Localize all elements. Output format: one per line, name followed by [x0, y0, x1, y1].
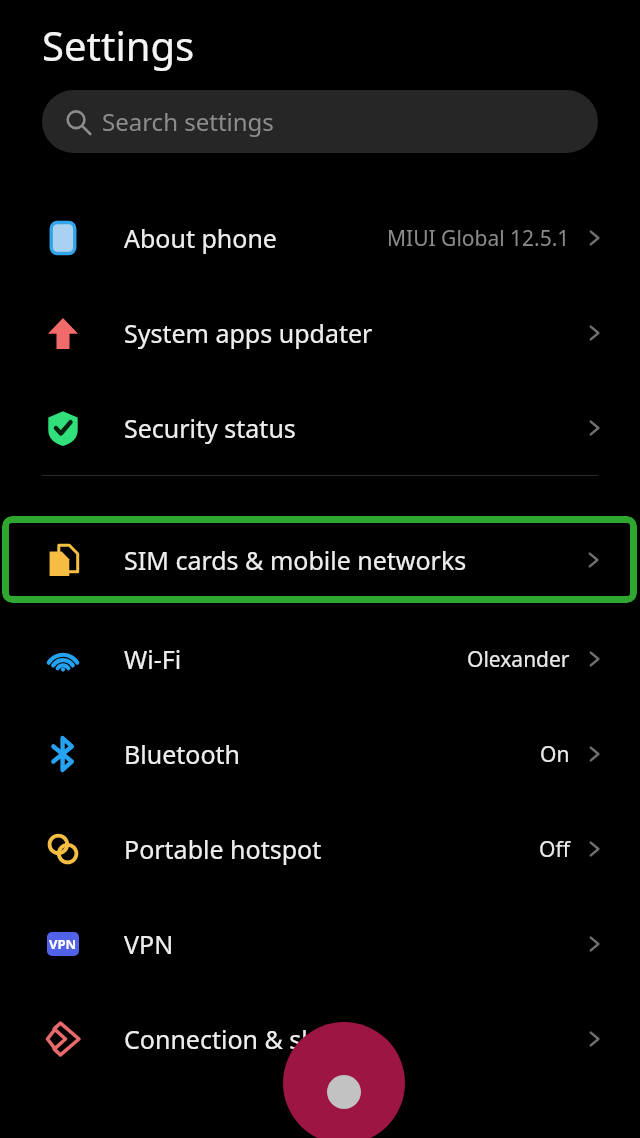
staticText: Bluetooth	[124, 737, 241, 771]
staticText: Portable hotspot	[124, 832, 322, 866]
button[interactable]: Search settings	[42, 90, 598, 153]
button[interactable]: Bluetooth	[0, 706, 640, 801]
button[interactable]: Connection & sharing	[0, 991, 640, 1086]
button[interactable]: Wi-Fi	[0, 611, 640, 706]
staticText: System apps updater	[124, 316, 373, 350]
staticText: VPN	[49, 935, 77, 953]
staticText: Connection & sharing	[124, 1022, 379, 1056]
button[interactable]: About phone	[0, 190, 640, 285]
staticText: VPN	[124, 927, 174, 961]
button[interactable]: Portable hotspot	[0, 801, 640, 896]
staticText: MIUI Global 12.5.1	[387, 224, 570, 253]
staticText: Security status	[124, 411, 296, 445]
button[interactable]: System apps updater	[0, 285, 640, 380]
staticText: Olexander	[467, 645, 570, 674]
staticText: About phone	[124, 221, 277, 255]
staticText: On	[540, 740, 570, 769]
staticText: Wi-Fi	[124, 642, 182, 676]
button[interactable]: Security status	[0, 380, 640, 475]
staticText: SIM cards & mobile networks	[124, 543, 467, 577]
staticText: Settings	[42, 18, 195, 72]
button[interactable]: VPN	[0, 896, 640, 991]
staticText: Off	[539, 835, 570, 864]
staticText: Search settings	[102, 105, 274, 138]
button[interactable]: SIM cards & mobile networks	[2, 516, 637, 603]
